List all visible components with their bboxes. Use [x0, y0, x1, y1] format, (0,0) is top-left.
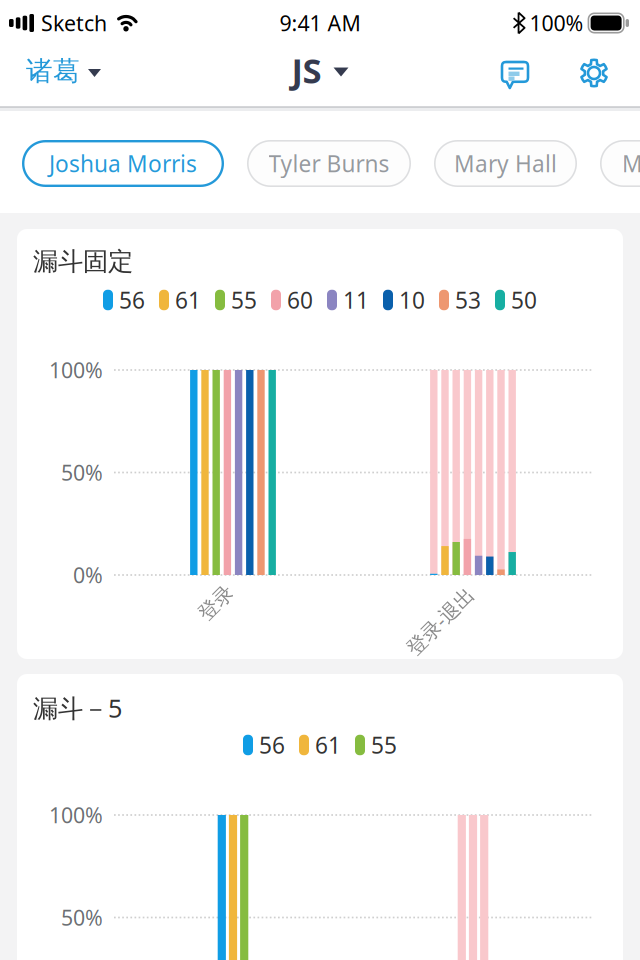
- button[interactable]: Tyler Burns: [247, 140, 411, 187]
- staticText: 登录: [196, 591, 236, 615]
- staticText: Tyler Burns: [268, 148, 389, 178]
- staticText: JS: [291, 47, 321, 93]
- staticText: 61: [175, 285, 201, 315]
- staticText: 50%: [61, 458, 103, 487]
- staticText: 61: [315, 730, 341, 760]
- staticText: 9:41 AM: [279, 9, 360, 37]
- staticText: 漏斗－5: [33, 691, 122, 725]
- button[interactable]: Mary Hall: [434, 140, 577, 187]
- staticText: 0%: [73, 561, 103, 589]
- staticText: Joshua Morris: [49, 148, 197, 178]
- staticText: 10: [399, 285, 425, 315]
- staticText: 100%: [530, 9, 584, 37]
- staticText: 50%: [61, 903, 103, 932]
- staticText: 50: [511, 285, 537, 315]
- button[interactable]: Feedback: [501, 58, 529, 88]
- button[interactable]: Melissa Garcia: [600, 140, 640, 187]
- staticText: 56: [259, 730, 285, 760]
- staticText: 60: [287, 285, 313, 315]
- staticText: 100%: [49, 356, 103, 384]
- staticText: Melissa Garcia: [622, 148, 640, 178]
- staticText: Mary Hall: [454, 148, 557, 178]
- staticText: 11: [343, 285, 369, 315]
- staticText: 55: [231, 285, 257, 315]
- staticText: 漏斗固定: [33, 246, 133, 277]
- staticText: 100%: [49, 801, 103, 829]
- button[interactable]: Settings: [579, 58, 609, 88]
- staticText: 56: [119, 285, 145, 315]
- button[interactable]: 诸葛: [26, 57, 101, 89]
- staticText: 诸葛: [26, 55, 80, 87]
- button[interactable]: JS: [291, 50, 348, 96]
- button[interactable]: Joshua Morris: [22, 140, 224, 187]
- staticText: 55: [371, 730, 397, 760]
- staticText: 53: [455, 285, 481, 315]
- staticText: Sketch: [41, 9, 107, 37]
- staticText: 登录-退出: [397, 608, 483, 634]
